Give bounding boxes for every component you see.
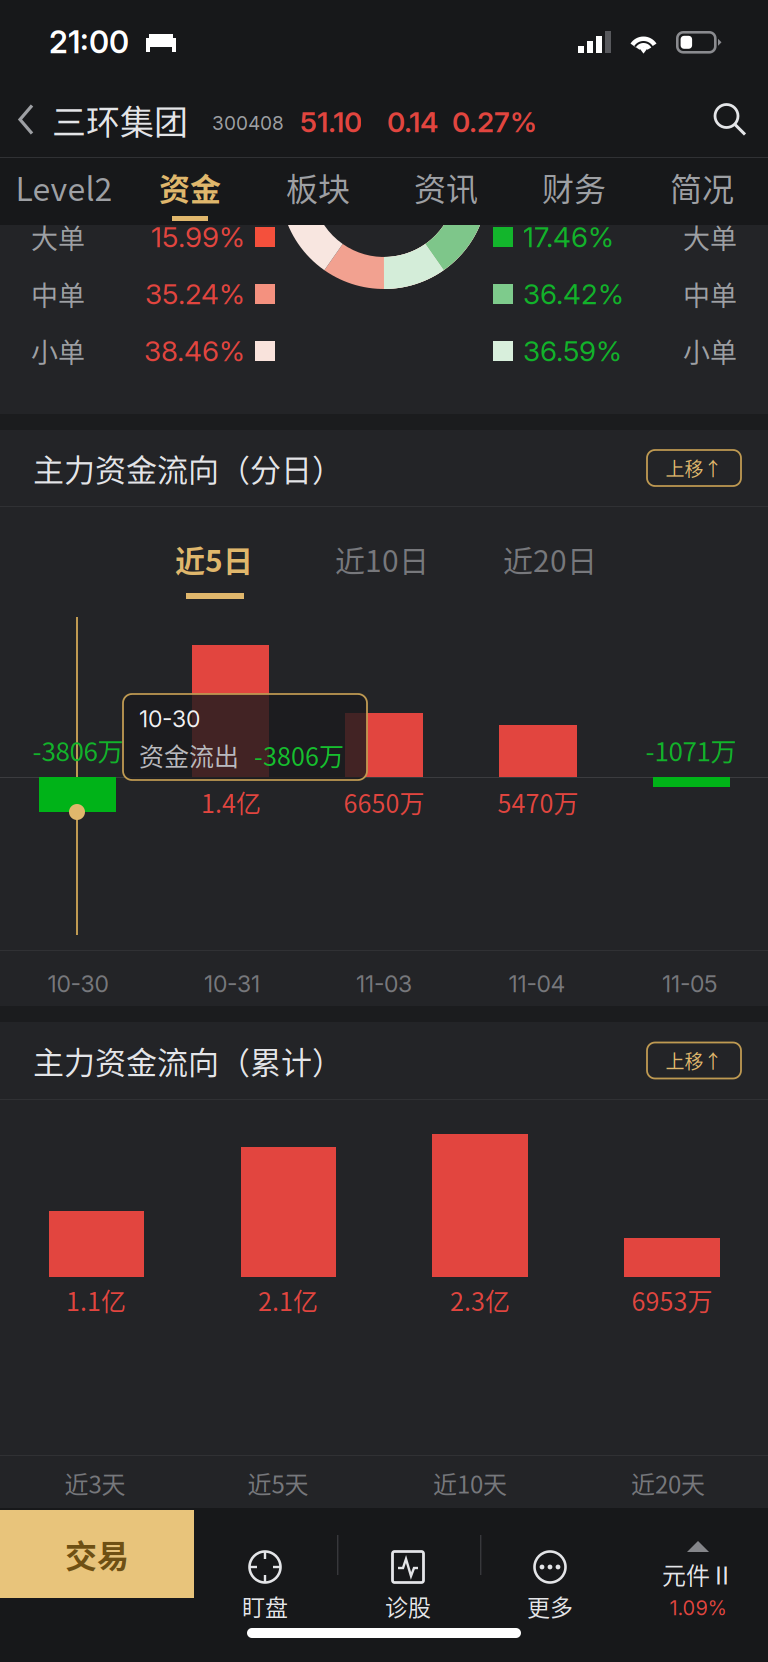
staticText: 资金 [159,165,221,209]
staticText: 0.27% [452,105,537,139]
button[interactable]: 近10日 [299,530,465,588]
button[interactable]: 近20天 [578,1457,758,1509]
staticText: 大单 [683,217,737,257]
staticText: 11-03 [356,970,412,998]
staticText: 2.1亿 [258,1282,318,1318]
staticText: 17.46% [523,220,614,254]
staticText: 6650万 [343,784,424,820]
staticText: 上移↑ [665,1047,722,1074]
button[interactable]: 近5日 [131,530,297,588]
staticText: 中单 [683,274,737,314]
staticText: 元件Ⅱ [662,1557,734,1591]
button[interactable]: 资讯 [382,158,510,216]
staticText: 21:00 [49,23,129,61]
staticText: 10-31 [204,970,260,998]
staticText: -1071万 [645,731,736,769]
button[interactable]: 简况 [638,158,766,216]
staticText: 近5日 [175,537,253,581]
staticText: 38.46% [144,334,245,368]
staticText: 1.09% [669,1596,726,1620]
button[interactable]: Level2 [0,158,128,216]
staticText: 盯盘 [242,1589,288,1623]
staticText: -3806万 [32,731,123,769]
staticText: 10-30 [47,970,108,998]
staticText: 近10天 [433,1466,507,1500]
button[interactable]: 返回 [0,82,54,157]
staticText: 近3天 [64,1466,125,1500]
staticText: 大单 [31,217,85,257]
staticText: 6953万 [631,1282,712,1318]
staticText: Level2 [15,164,112,210]
staticText: 1.4亿 [201,784,261,820]
button[interactable]: 交易 [0,1510,194,1598]
staticText: 近10日 [335,537,429,581]
staticText: 近20天 [631,1466,705,1500]
button[interactable]: 上移↑ [646,449,742,487]
staticText: 板块 [286,164,350,210]
staticText: 11-04 [508,970,565,998]
button[interactable]: 元件Ⅱ [628,1508,768,1600]
staticText: 主力资金流向（分日） [33,446,343,490]
staticText: 10-30 [139,705,200,733]
staticText: 中单 [31,274,85,314]
staticText: 1.1亿 [66,1282,126,1318]
staticText: 51.10 [300,105,362,139]
staticText: 简况 [670,164,734,210]
button[interactable]: 近20日 [467,530,633,588]
staticText: 小单 [683,331,737,371]
staticText: 资讯 [414,164,478,210]
staticText: 财务 [542,164,606,210]
staticText: 更多 [527,1589,573,1623]
button[interactable]: 上移↑ [646,1041,742,1079]
staticText: 近20日 [503,537,597,581]
button[interactable]: 更多 [490,1510,610,1600]
button[interactable]: 板块 [254,158,382,216]
button[interactable]: 资金 [126,158,254,216]
staticText: 35.24% [145,277,245,311]
staticText: 上移↑ [665,454,722,482]
staticText: 2.3亿 [450,1282,510,1318]
button[interactable]: 近3天 [5,1457,185,1509]
button[interactable]: 诊股 [348,1510,468,1600]
staticText: 15.99% [151,220,245,254]
staticText: 300408 [212,111,284,134]
staticText: 近5天 [247,1466,308,1500]
staticText: -3806万 [254,737,344,773]
staticText: 主力资金流向（累计） [33,1038,343,1083]
button[interactable]: 近5天 [188,1457,368,1509]
staticText: 小单 [31,331,85,371]
button[interactable]: 盯盘 [205,1510,325,1600]
staticText: 36.42% [523,277,624,311]
button[interactable]: 搜索 [692,82,768,157]
staticText: 诊股 [385,1589,431,1623]
staticText: 36.59% [523,334,622,368]
button[interactable]: 财务 [510,158,638,216]
staticText: 交易 [65,1531,129,1577]
staticText: 0.14 [387,105,438,139]
staticText: 三环集团 [52,95,188,145]
staticText: 11-05 [662,970,718,998]
staticText: 资金流出 [139,737,239,773]
staticText: 5470万 [497,784,578,820]
button[interactable]: 近10天 [380,1457,560,1509]
